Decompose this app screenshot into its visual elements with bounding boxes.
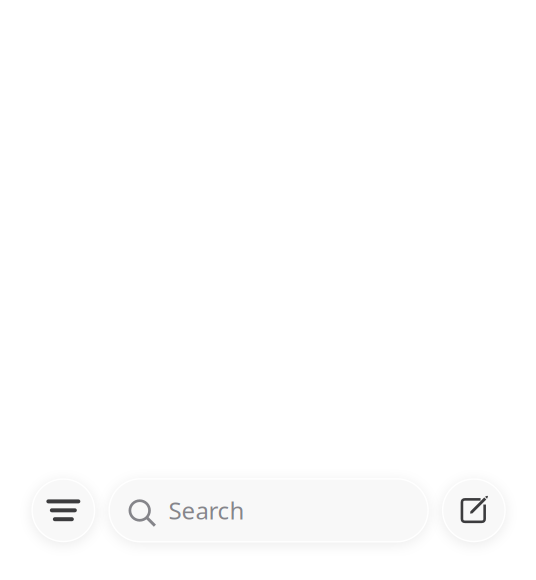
button[interactable]: Filter — [32, 479, 95, 542]
button[interactable]: Compose — [443, 479, 505, 542]
button[interactable]: Search — [109, 479, 428, 542]
staticText: Search — [169, 494, 245, 526]
